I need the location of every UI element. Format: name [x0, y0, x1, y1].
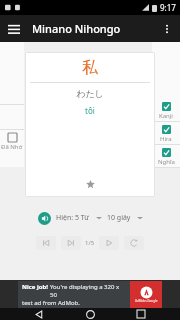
staticText: Minano Nihongo — [32, 21, 121, 36]
button[interactable]: More options — [157, 19, 177, 39]
staticText: test ad from AdMob. — [22, 299, 80, 307]
staticText: Hira — [160, 135, 172, 143]
button[interactable]: Hira — [152, 122, 180, 145]
staticText: 10 giây — [107, 213, 131, 223]
button[interactable]: Advertisement — [18, 281, 162, 308]
staticText: Kanji — [159, 112, 173, 120]
button[interactable]: Recent apps — [129, 308, 153, 320]
staticText: Nghĩa — [158, 158, 175, 166]
button[interactable]: Play — [99, 236, 119, 250]
button[interactable]: Word count dropdown — [94, 213, 104, 223]
staticText: わたし — [76, 88, 104, 99]
staticText: Đã Nhớ — [1, 143, 23, 151]
button[interactable]: Đã Nhớ — [0, 130, 24, 151]
staticText: 私 — [82, 58, 98, 78]
staticText: You're displaying a 320 x 50 — [50, 283, 126, 299]
button[interactable]: Kanji — [152, 99, 180, 122]
button[interactable]: Nghĩa — [152, 145, 180, 168]
button[interactable]: Next — [61, 236, 81, 250]
button[interactable]: Home — [78, 308, 102, 320]
staticText: Hiện: 5 Từ — [56, 213, 90, 223]
button[interactable]: Back — [27, 308, 51, 320]
staticText: AdMobs Google — [135, 299, 158, 303]
button[interactable]: Favorite — [81, 175, 99, 193]
button[interactable]: Repeat — [124, 236, 144, 250]
button[interactable]: Interval dropdown — [135, 213, 145, 223]
staticText: tôi — [85, 105, 95, 116]
staticText: 1/5 — [85, 239, 95, 247]
button[interactable]: 私 — [25, 52, 155, 197]
button[interactable]: Previous — [36, 236, 56, 250]
button[interactable]: Open navigation menu — [4, 19, 24, 39]
button[interactable]: Play audio — [36, 210, 52, 226]
staticText: Nice job! — [22, 283, 50, 291]
staticText: 9:17 — [160, 2, 176, 13]
